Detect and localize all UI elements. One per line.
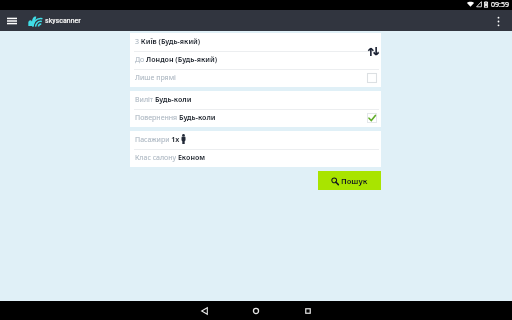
- staticText: Клас салону Економ: [135, 153, 206, 163]
- button[interactable]: Клас салону Економ: [130, 149, 381, 167]
- button[interactable]: Swap origin and destination: [367, 45, 380, 58]
- button[interactable]: Home: [234, 301, 278, 320]
- button[interactable]: Пошук: [318, 171, 381, 190]
- staticText: Повернення Будь-коли: [135, 113, 216, 123]
- staticText: Пошук: [341, 176, 368, 186]
- button[interactable]: До Лондон (Будь-який): [130, 51, 381, 69]
- button[interactable]: Open navigation menu: [4, 13, 20, 29]
- staticText: skyscanner: [45, 16, 81, 25]
- button[interactable]: З Київ (Будь-який): [130, 33, 381, 51]
- button[interactable]: Виліт Будь-коли: [130, 91, 381, 109]
- button[interactable]: More options: [489, 12, 507, 30]
- button[interactable]: Пасажири 1x: [130, 131, 381, 149]
- staticText: 09:59: [491, 0, 509, 10]
- button[interactable]: Recent apps: [286, 301, 330, 320]
- staticText: До Лондон (Будь-який): [135, 55, 218, 65]
- button[interactable]: Direct flights only: [365, 71, 379, 85]
- staticText: Пасажири 1x: [135, 135, 180, 145]
- button[interactable]: Повернення Будь-коли: [130, 109, 381, 127]
- staticText: Виліт Будь-коли: [135, 95, 192, 105]
- button[interactable]: Лише прямі: [130, 69, 381, 87]
- button[interactable]: Back: [182, 301, 226, 320]
- button[interactable]: Return date selected: [365, 111, 379, 125]
- staticText: З Київ (Будь-який): [135, 37, 201, 47]
- staticText: Лише прямі: [135, 73, 176, 83]
